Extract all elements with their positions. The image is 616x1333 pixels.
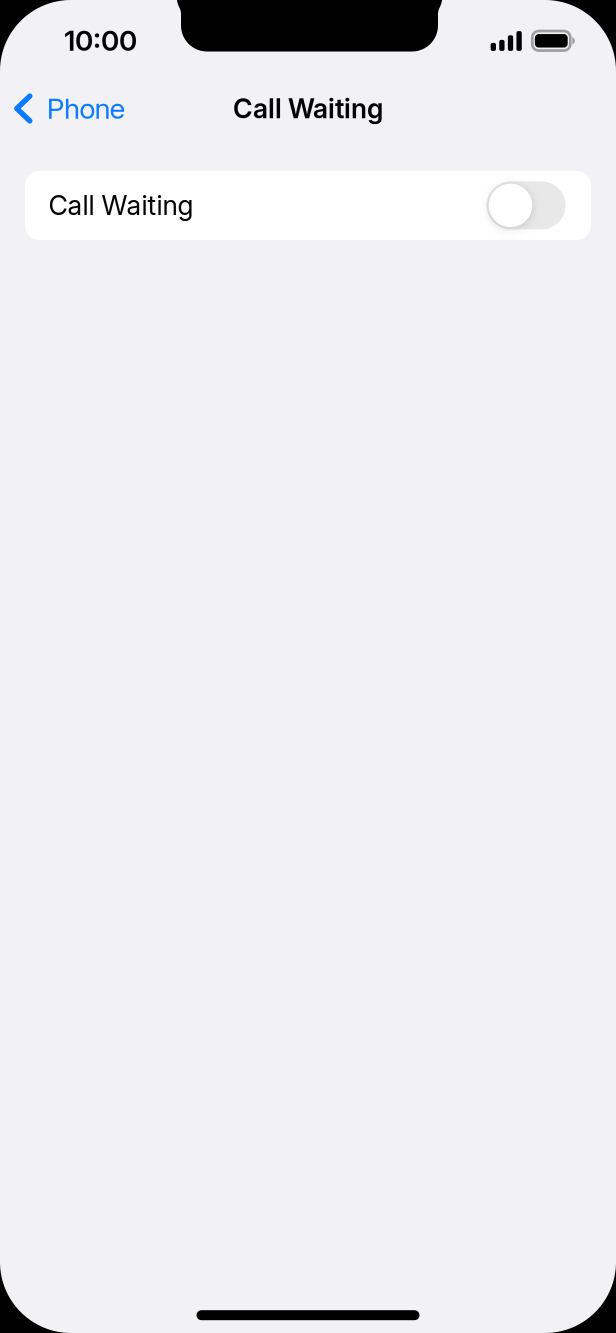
button[interactable]: Call Waiting [486,181,565,229]
staticText: 10:00 [64,24,137,57]
staticText: Call Waiting [233,92,383,125]
staticText: Call Waiting [48,189,193,222]
button[interactable]: Phone [0,79,200,137]
button[interactable]: Call Waiting [25,171,591,240]
staticText: Phone [47,92,126,125]
